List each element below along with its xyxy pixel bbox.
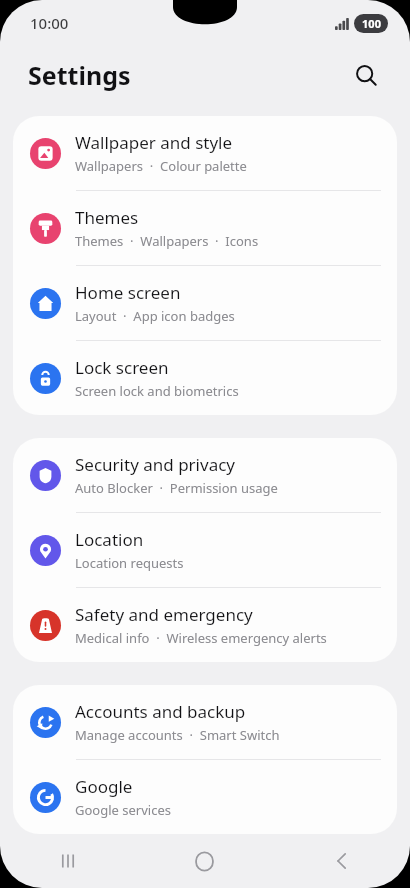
button[interactable]: Google — [13, 760, 397, 834]
staticText: Google services — [75, 801, 171, 819]
button[interactable]: Search — [344, 53, 388, 97]
staticText: Home screen — [75, 281, 181, 304]
staticText: Google — [75, 775, 133, 798]
button[interactable]: Home — [136, 834, 273, 888]
button[interactable]: Location — [13, 513, 397, 587]
staticText: 100 — [362, 16, 381, 31]
staticText: Wallpaper and style — [75, 131, 233, 154]
staticText: Auto Blocker · Permission usage — [75, 479, 278, 497]
staticText: Safety and emergency — [75, 603, 253, 626]
staticText: Lock screen — [75, 356, 169, 379]
staticText: Settings — [28, 58, 131, 92]
button[interactable]: Back — [273, 834, 410, 888]
staticText: Accounts and backup — [75, 700, 246, 723]
button[interactable]: Themes — [13, 191, 397, 265]
button[interactable]: Recent apps — [0, 834, 136, 888]
staticText: Security and privacy — [75, 453, 236, 476]
button[interactable]: Security and privacy — [13, 438, 397, 512]
staticText: Wallpapers · Colour palette — [75, 157, 247, 175]
staticText: Themes — [75, 206, 139, 229]
staticText: 10:00 — [30, 13, 69, 33]
button[interactable]: Safety and emergency — [13, 588, 397, 662]
button[interactable]: Home screen — [13, 266, 397, 340]
button[interactable]: Accounts and backup — [13, 685, 397, 759]
staticText: Location requests — [75, 554, 184, 572]
staticText: Medical info · Wireless emergency alerts — [75, 629, 327, 647]
button[interactable]: Lock screen — [13, 341, 397, 415]
button[interactable]: Wallpaper and style — [13, 116, 397, 190]
staticText: Layout · App icon badges — [75, 307, 235, 325]
staticText: Manage accounts · Smart Switch — [75, 726, 280, 744]
staticText: Themes · Wallpapers · Icons — [75, 232, 259, 250]
staticText: Location — [75, 528, 144, 551]
staticText: Screen lock and biometrics — [75, 382, 239, 400]
